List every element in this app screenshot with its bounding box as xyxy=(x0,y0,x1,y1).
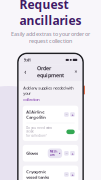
button[interactable]: Increase xyxy=(70,112,75,117)
button[interactable]: Close xyxy=(72,68,79,75)
button[interactable]: Increase xyxy=(70,151,75,156)
staticText: 9:41 xyxy=(24,57,31,63)
button[interactable]: Medium xyxy=(48,148,62,158)
staticText: collection xyxy=(23,97,39,102)
staticText: + xyxy=(71,112,73,117)
staticText: Gloves xyxy=(26,151,38,156)
staticText: Easily add extras to your order or xyxy=(11,30,90,37)
staticText: Medium xyxy=(50,150,58,157)
staticText: + xyxy=(71,151,73,156)
button[interactable]: Decrease xyxy=(64,112,69,117)
staticText: ▾ xyxy=(59,152,60,155)
button[interactable]: Extra sleeve toggle xyxy=(66,129,75,134)
staticText: ✕ xyxy=(74,69,77,74)
staticText: Order equipment xyxy=(37,65,64,79)
staticText: ‹ xyxy=(24,67,26,76)
staticText: − xyxy=(65,151,67,156)
staticText: Add any supplies needed with your xyxy=(23,85,73,96)
staticText: Request ancillaries xyxy=(19,0,81,28)
staticText: AI Airline Cargo Bin xyxy=(26,109,46,120)
staticText: − xyxy=(65,172,67,177)
staticText: + xyxy=(71,172,73,177)
button[interactable]: Decrease xyxy=(64,172,69,177)
staticText: for collection? xyxy=(26,134,46,137)
staticText: − xyxy=(65,112,67,117)
staticText: request collection xyxy=(29,37,72,44)
staticText: Cryogenic vessel tanks xyxy=(26,169,49,180)
button[interactable]: Decrease xyxy=(64,151,69,156)
button[interactable]: Back xyxy=(22,68,29,75)
staticText: Do you need extra sleeve xyxy=(26,126,51,133)
button[interactable]: Increase xyxy=(70,172,75,177)
